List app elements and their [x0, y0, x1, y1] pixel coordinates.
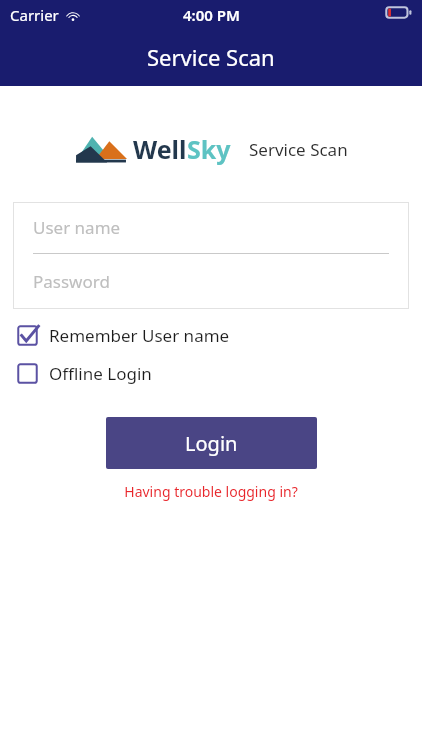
- button[interactable]: Password: [13, 254, 409, 308]
- staticText: Carrier: [10, 5, 59, 25]
- staticText: Sky: [187, 132, 231, 166]
- staticText: Offline Login: [49, 362, 152, 385]
- staticText: Password: [33, 270, 110, 293]
- button[interactable]: Remember User name: [0, 321, 422, 350]
- staticText: Having trouble logging in?: [124, 482, 298, 501]
- button[interactable]: Login: [106, 417, 317, 469]
- staticText: Well: [133, 132, 187, 166]
- staticText: Login: [185, 430, 238, 457]
- button[interactable]: User name: [13, 202, 409, 253]
- staticText: User name: [33, 216, 121, 239]
- staticText: 4:00 PM: [183, 5, 240, 25]
- staticText: Service Scan: [147, 42, 275, 72]
- staticText: Remember User name: [49, 324, 230, 347]
- staticText: Service Scan: [249, 138, 348, 161]
- other: Battery low: [385, 6, 412, 19]
- button[interactable]: Having trouble logging in?: [0, 482, 422, 501]
- button[interactable]: Offline Login: [0, 359, 422, 388]
